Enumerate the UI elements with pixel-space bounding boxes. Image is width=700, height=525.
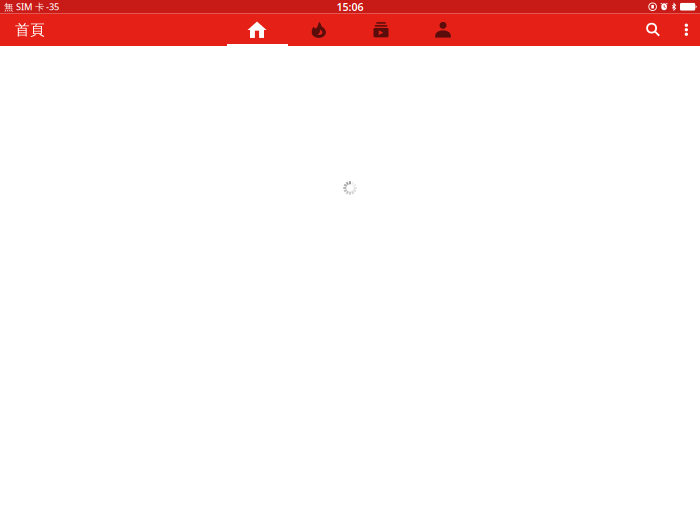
button[interactable]: Account <box>412 13 474 46</box>
button[interactable]: Home <box>226 13 288 46</box>
button[interactable]: Search <box>634 13 673 46</box>
button[interactable]: More options <box>673 13 700 46</box>
button[interactable]: Subscriptions <box>350 13 412 46</box>
button[interactable]: Trending <box>288 13 350 46</box>
staticText: 首頁 <box>15 21 45 39</box>
staticText: 15:06 <box>336 0 363 14</box>
staticText: 無 SIM 卡 -35 <box>4 1 59 13</box>
